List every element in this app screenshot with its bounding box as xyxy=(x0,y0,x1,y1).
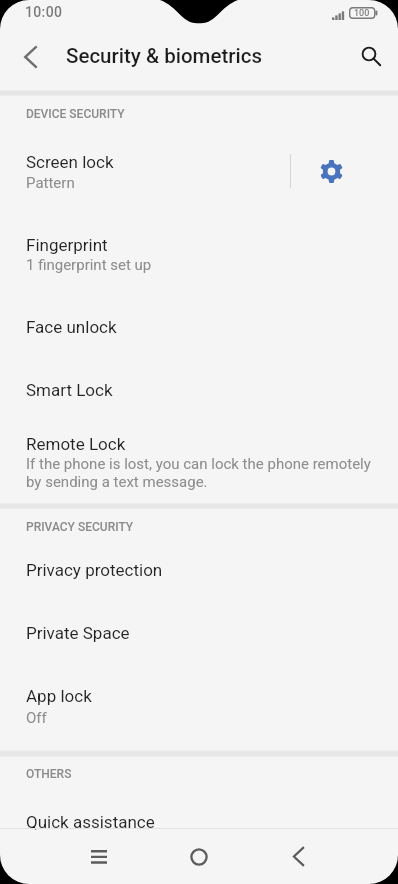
staticText: Quick assistance xyxy=(26,812,155,832)
staticText: Remote Lock xyxy=(26,434,126,454)
staticText: DEVICE SECURITY xyxy=(26,107,125,121)
button[interactable]: Screen lock xyxy=(0,130,398,205)
button[interactable]: Recent apps xyxy=(71,829,127,884)
staticText: Pattern xyxy=(26,174,75,192)
staticText: If the phone is lost, you can lock the p… xyxy=(26,455,378,490)
staticText: 10:00 xyxy=(25,4,63,20)
button[interactable]: Face unlock xyxy=(0,287,398,348)
button[interactable]: Search xyxy=(346,33,396,81)
staticText: Privacy protection xyxy=(26,560,163,580)
staticText: Private Space xyxy=(26,623,130,643)
button[interactable]: Fingerprint xyxy=(0,205,398,287)
staticText: App lock xyxy=(26,686,92,706)
button[interactable]: Home xyxy=(171,829,227,884)
button[interactable]: Back xyxy=(270,829,326,884)
staticText: OTHERS xyxy=(26,767,72,781)
staticText: PRIVACY SECURITY xyxy=(26,520,134,534)
button[interactable]: Remote Lock xyxy=(0,411,398,502)
button[interactable]: Smart Lock xyxy=(0,348,398,411)
button[interactable]: App lock xyxy=(0,674,398,749)
button[interactable]: Screen lock settings xyxy=(308,148,355,195)
staticText: Security & biometrics xyxy=(66,44,262,68)
staticText: 100 xyxy=(354,8,370,19)
staticText: Smart Lock xyxy=(26,380,113,400)
staticText: 1 fingerprint set up xyxy=(26,256,152,274)
staticText: Screen lock xyxy=(26,152,114,172)
button[interactable]: Privacy protection xyxy=(0,540,398,611)
staticText: Face unlock xyxy=(26,317,117,337)
button[interactable]: Quick assistance xyxy=(0,790,398,828)
staticText: Off xyxy=(26,709,47,727)
button[interactable]: Private Space xyxy=(0,611,398,674)
button[interactable]: Navigate up xyxy=(2,33,59,81)
staticText: Fingerprint xyxy=(26,235,108,255)
